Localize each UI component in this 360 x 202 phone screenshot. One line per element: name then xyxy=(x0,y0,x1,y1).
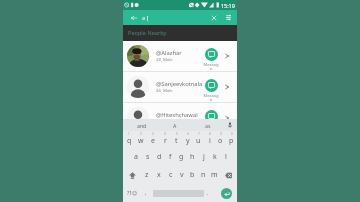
staticText: s xyxy=(146,152,150,162)
staticText: Message xyxy=(203,124,219,133)
staticText: e xyxy=(151,136,155,146)
staticText: . xyxy=(207,189,209,196)
staticText: 5 xyxy=(176,132,178,136)
button[interactable]: as xyxy=(191,119,224,131)
staticText: 6 xyxy=(187,132,189,136)
button[interactable]: a xyxy=(130,148,142,166)
button[interactable]: 9 xyxy=(215,131,226,148)
button[interactable]: g xyxy=(176,148,187,166)
button[interactable]: 7 xyxy=(193,131,204,148)
button[interactable]: d xyxy=(154,148,165,166)
staticText: t xyxy=(175,136,178,146)
staticText: m xyxy=(211,170,218,180)
button[interactable]: 8 xyxy=(204,131,215,148)
button[interactable]: b xyxy=(187,166,198,184)
staticText: n xyxy=(201,170,206,180)
button[interactable]: A xyxy=(158,119,191,131)
button[interactable]: n xyxy=(198,166,209,184)
staticText: i xyxy=(209,136,211,146)
staticText: q xyxy=(127,136,132,146)
button[interactable]: Open profile xyxy=(222,51,231,60)
staticText: 15:19 xyxy=(221,2,235,9)
button[interactable]: 6 xyxy=(182,131,193,148)
staticText: l xyxy=(225,152,227,162)
staticText: h xyxy=(190,152,195,162)
button[interactable]: 3 xyxy=(147,131,159,148)
staticText: ?1☺ xyxy=(127,190,138,197)
button[interactable]: Open profile xyxy=(222,113,231,122)
button[interactable]: Message xyxy=(201,110,221,133)
button[interactable]: Message xyxy=(201,79,221,102)
staticText: b xyxy=(190,170,195,180)
staticText: x xyxy=(157,170,161,180)
staticText: @Sanjeevkotnala xyxy=(156,80,203,88)
button[interactable]: Backspace xyxy=(220,166,237,184)
staticText: g xyxy=(179,152,184,162)
staticText: 3 xyxy=(152,132,154,136)
button[interactable]: f xyxy=(165,148,176,166)
staticText: People Nearby xyxy=(128,29,167,37)
button[interactable]: ?1☺ xyxy=(123,184,141,202)
button[interactable]: z xyxy=(141,166,153,184)
staticText: a xyxy=(134,152,138,162)
button[interactable]: @Alazhar xyxy=(123,41,237,72)
button[interactable]: . xyxy=(203,184,213,202)
staticText: r xyxy=(164,136,167,146)
staticText: 28, Male xyxy=(156,57,173,63)
button[interactable]: 4 xyxy=(159,131,171,148)
button[interactable]: Shift xyxy=(123,166,141,184)
staticText: z xyxy=(145,170,149,180)
button[interactable]: Message xyxy=(201,48,221,71)
button[interactable]: l xyxy=(220,148,231,166)
staticText: 7 xyxy=(198,132,200,136)
staticText: and xyxy=(137,122,147,129)
button[interactable]: and xyxy=(125,119,158,131)
staticText: v xyxy=(180,170,184,180)
staticText: 0 xyxy=(231,132,233,136)
staticText: o xyxy=(218,136,223,146)
staticText: @Hiteshchawal xyxy=(156,111,198,119)
button[interactable]: 0 xyxy=(226,131,237,148)
staticText: @Alazhar xyxy=(156,49,182,57)
button[interactable]: 1 xyxy=(123,131,135,148)
staticText: 46, Male xyxy=(156,88,173,94)
button[interactable]: s xyxy=(142,148,154,166)
staticText: j xyxy=(203,152,205,162)
staticText: Message xyxy=(203,93,219,102)
button[interactable]: Enter xyxy=(213,184,237,202)
staticText: y xyxy=(186,136,190,146)
staticText: 2 xyxy=(140,132,142,136)
button[interactable]: Clear xyxy=(208,12,219,23)
staticText: k xyxy=(213,152,217,162)
button[interactable]: h xyxy=(187,148,198,166)
button[interactable]: Voice input xyxy=(224,119,235,131)
staticText: A xyxy=(173,122,177,129)
staticText: a xyxy=(142,14,146,22)
staticText: f xyxy=(169,152,172,162)
button[interactable]: @Sanjeevkotnala xyxy=(123,72,237,103)
button[interactable]: Open profile xyxy=(222,82,231,91)
button[interactable]: x xyxy=(153,166,165,184)
staticText: 4 xyxy=(164,132,166,136)
button[interactable]: Filter xyxy=(223,12,234,23)
staticText: c xyxy=(169,170,173,180)
button[interactable]: m xyxy=(209,166,220,184)
button[interactable]: Space xyxy=(151,184,203,202)
staticText: Message xyxy=(203,62,219,71)
button[interactable]: @Hiteshchawal xyxy=(123,103,237,134)
button[interactable]: 5 xyxy=(171,131,182,148)
staticText: 1 xyxy=(128,132,130,136)
button[interactable]: v xyxy=(176,166,187,184)
staticText: w xyxy=(138,136,144,146)
button[interactable]: 2 xyxy=(135,131,147,148)
staticText: as xyxy=(205,122,211,129)
button[interactable]: c xyxy=(165,166,176,184)
button[interactable]: j xyxy=(198,148,209,166)
button[interactable]: , xyxy=(141,184,151,202)
button[interactable]: k xyxy=(209,148,220,166)
button[interactable]: Back xyxy=(128,12,139,23)
staticText: p xyxy=(229,136,234,146)
staticText: 8 xyxy=(209,132,211,136)
staticText: , xyxy=(145,189,147,196)
